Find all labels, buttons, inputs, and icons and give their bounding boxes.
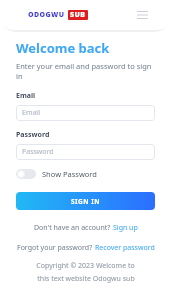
staticText: Copyright © 2023 Welcome to [36, 261, 135, 271]
staticText: Forgot your password? [17, 243, 95, 253]
button[interactable]: Email [16, 105, 155, 121]
staticText: SUB [70, 10, 86, 20]
staticText: Sign up [113, 223, 138, 233]
button[interactable]: Show Password [16, 168, 97, 180]
staticText: Recover password [95, 243, 155, 253]
button[interactable]: SIGN IN [16, 192, 155, 210]
staticText: Show Password [42, 169, 97, 179]
staticText: Password [22, 147, 54, 157]
staticText: Email [22, 108, 40, 118]
staticText: Welcome back [16, 39, 110, 57]
button[interactable]: Odogwu Sub logo [28, 10, 88, 20]
button[interactable]: Password [16, 144, 155, 160]
staticText: Don't have an account? [34, 223, 113, 233]
staticText: Password [16, 130, 50, 140]
button[interactable]: Recover password [95, 243, 155, 253]
button[interactable]: Open navigation menu [133, 6, 151, 24]
staticText: SIGN IN [71, 197, 101, 206]
staticText: ODOGWU [28, 10, 65, 20]
staticText: Enter your email and password to sign in [16, 61, 155, 81]
button[interactable]: Sign up [113, 223, 138, 233]
staticText: Email [16, 91, 36, 101]
staticText: this text website Odogwu sub [37, 274, 135, 284]
